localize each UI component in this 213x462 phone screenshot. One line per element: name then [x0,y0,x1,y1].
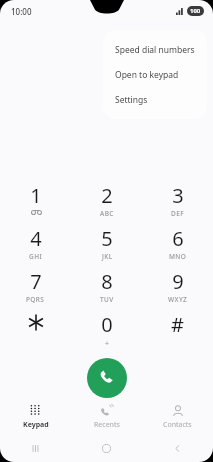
button[interactable]: Recents [71,400,142,434]
staticText: 1 [30,182,42,209]
staticText: 3 [172,182,184,209]
button[interactable]: # [142,311,213,354]
button[interactable]: 8 [71,268,142,311]
staticText: 2 [101,182,113,209]
staticText: 6 [172,225,184,252]
staticText: 10:00 [11,6,32,17]
staticText: PQRS [26,295,45,304]
button[interactable]: 6 [142,225,213,268]
button[interactable]: Open to keypad [103,62,207,87]
staticText: 5 [101,225,113,252]
button[interactable]: 2 [71,182,142,225]
button[interactable]: 0 [71,311,142,354]
staticText: JKL [102,252,113,261]
button[interactable]: 1 [0,182,71,225]
staticText: Recents [94,420,120,430]
button[interactable]: Settings [103,87,207,112]
button[interactable]: 7 [0,268,71,311]
staticText: 0 [101,311,113,338]
button[interactable]: 9 [142,268,213,311]
staticText: GHI [29,252,43,261]
staticText: + [105,339,110,349]
staticText: Settings [115,94,148,106]
staticText: 4 [30,225,42,252]
staticText: TUV [100,295,114,304]
staticText: 7 [30,268,42,295]
staticText: Contacts [163,420,192,430]
staticText: MNO [169,252,187,261]
button[interactable]: Call [87,358,127,398]
button[interactable]: 4 [0,225,71,268]
button[interactable]: Back [142,434,213,462]
staticText: ABC [100,209,114,218]
button[interactable]: Keypad [0,400,71,434]
staticText: 9 [172,268,184,295]
button[interactable]: Speed dial numbers [103,37,207,62]
staticText: 100 [190,7,201,15]
staticText: Speed dial numbers [115,44,195,56]
staticText: Open to keypad [115,69,179,81]
staticText: Keypad [23,420,49,430]
staticText: DEF [171,209,185,218]
staticText: 8 [101,268,113,295]
staticText: # [171,311,184,338]
button[interactable]: Home [71,434,142,462]
button[interactable]: 5 [71,225,142,268]
button[interactable]: Contacts [142,400,213,434]
button[interactable]: 3 [142,182,213,225]
staticText: WXYZ [168,295,188,304]
button[interactable]: Recent apps [0,434,71,462]
button[interactable] [0,311,71,354]
